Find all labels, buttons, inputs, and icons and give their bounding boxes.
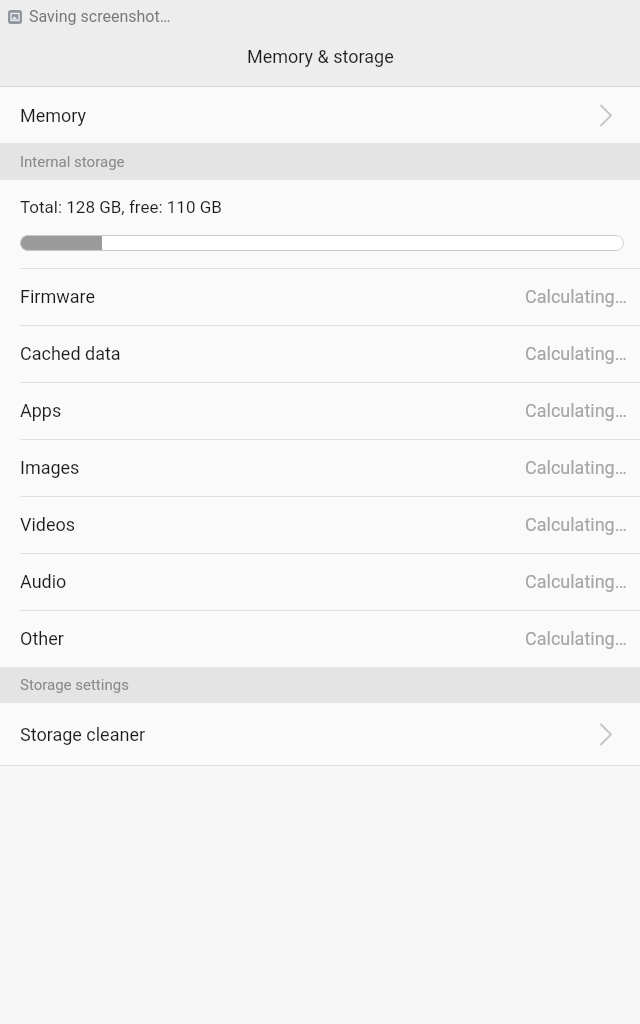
button[interactable]: Firmware (0, 268, 640, 325)
staticText: Cached data (20, 343, 121, 364)
staticText: Firmware (20, 286, 96, 307)
staticText: Internal storage (20, 153, 125, 171)
button[interactable]: Videos (0, 496, 640, 553)
staticText: Calculating… (525, 571, 627, 592)
staticText: Calculating… (525, 628, 627, 649)
button[interactable]: Memory (0, 87, 640, 143)
staticText: Apps (20, 400, 62, 421)
staticText: Calculating… (525, 286, 627, 307)
button[interactable]: Storage cleaner (0, 703, 640, 765)
staticText: Calculating… (525, 514, 627, 535)
button[interactable]: Other (0, 610, 640, 667)
staticText: Calculating… (525, 400, 627, 421)
button[interactable]: Cached data (0, 325, 640, 382)
staticText: Storage settings (20, 676, 129, 694)
staticText: Other (20, 628, 64, 649)
staticText: Memory & storage (247, 46, 394, 67)
staticText: Calculating… (525, 343, 627, 364)
button[interactable]: Images (0, 439, 640, 496)
staticText: Memory (20, 105, 87, 126)
staticText: Images (20, 457, 80, 478)
staticText: Videos (20, 514, 76, 535)
staticText: Total: 128 GB, free: 110 GB (20, 197, 222, 217)
staticText: Saving screenshot… (29, 7, 171, 26)
staticText: Calculating… (525, 457, 627, 478)
button[interactable]: Audio (0, 553, 640, 610)
staticText: Audio (20, 571, 67, 592)
button[interactable]: Apps (0, 382, 640, 439)
staticText: Storage cleaner (20, 724, 146, 745)
